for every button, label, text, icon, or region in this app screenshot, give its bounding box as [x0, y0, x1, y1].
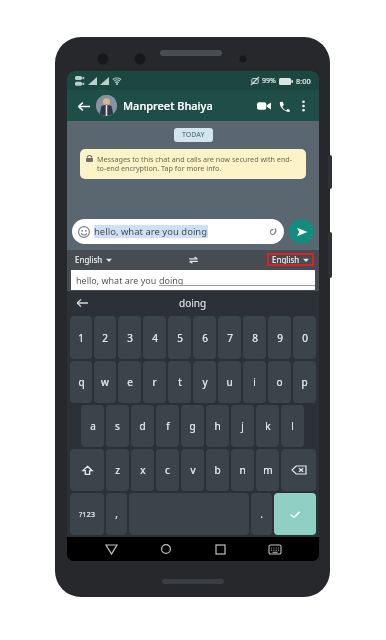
staticText: 6 — [202, 331, 208, 345]
button[interactable]: Back — [74, 97, 92, 115]
staticText: . — [260, 507, 263, 521]
button[interactable]: t — [168, 361, 191, 403]
button[interactable]: x — [131, 449, 154, 491]
staticText: v — [190, 463, 196, 477]
button[interactable]: i — [243, 361, 266, 403]
button[interactable]: c — [156, 449, 179, 491]
staticText: English — [75, 254, 103, 265]
button[interactable]: 6 — [193, 316, 216, 359]
button[interactable]: . — [251, 493, 272, 535]
button[interactable]: Profile photo — [96, 95, 117, 116]
staticText: 5 — [177, 331, 183, 345]
button[interactable]: Send — [289, 219, 314, 244]
button[interactable]: r — [143, 361, 166, 403]
button[interactable]: z — [106, 449, 129, 491]
button[interactable]: English — [75, 254, 112, 265]
staticText: doing — [159, 274, 184, 286]
staticText: q — [78, 375, 85, 389]
button[interactable]: w — [94, 361, 116, 403]
button[interactable]: Back — [100, 538, 122, 560]
staticText: u — [226, 375, 233, 389]
button[interactable]: o — [268, 361, 291, 403]
staticText: j — [241, 419, 244, 433]
button[interactable]: b — [206, 449, 229, 491]
button[interactable]: Shift — [70, 449, 104, 491]
staticText: d — [139, 419, 146, 433]
button[interactable]: 5 — [168, 316, 191, 359]
button[interactable]: Backspace — [281, 449, 316, 491]
button[interactable]: p — [293, 361, 316, 403]
staticText: TODAY — [182, 130, 205, 140]
staticText: 99% — [262, 76, 276, 86]
staticText: t — [178, 375, 182, 389]
staticText: hello, what are you — [76, 274, 159, 286]
button[interactable]: Enter — [274, 493, 316, 535]
button[interactable]: d — [131, 405, 154, 447]
button[interactable]: Symbols — [70, 493, 104, 535]
staticText: k — [265, 419, 271, 433]
staticText: w — [101, 375, 109, 389]
button[interactable]: 9 — [268, 316, 291, 359]
staticText: hello, what are you doing — [94, 225, 208, 238]
button[interactable]: 4 — [143, 316, 166, 359]
button[interactable]: Video call — [254, 96, 274, 116]
button[interactable]: y — [193, 361, 216, 403]
staticText: 9 — [277, 331, 283, 345]
button[interactable]: q — [70, 361, 92, 403]
button[interactable]: v — [181, 449, 204, 491]
button[interactable]: 0 — [293, 316, 316, 359]
button[interactable]: Home — [155, 538, 177, 560]
button[interactable]: hello, what are you doing — [72, 219, 284, 244]
button[interactable]: 2 — [94, 316, 116, 359]
staticText: y — [202, 375, 208, 389]
staticText: c — [165, 463, 170, 477]
staticText: doing — [179, 296, 207, 310]
button[interactable]: l — [281, 405, 304, 447]
button[interactable]: Messages to this chat and calls are now … — [80, 149, 306, 179]
button[interactable]: 1 — [70, 316, 92, 359]
button[interactable]: n — [231, 449, 254, 491]
button[interactable]: hello, what are you — [71, 270, 315, 290]
button[interactable]: k — [256, 405, 279, 447]
staticText: l — [291, 419, 294, 433]
button[interactable]: f — [156, 405, 179, 447]
staticText: 8:00 — [296, 76, 311, 86]
button[interactable]: More options — [294, 97, 312, 115]
staticText: p — [301, 375, 308, 389]
staticText: 0 — [302, 331, 308, 345]
staticText: ?123 — [79, 509, 96, 519]
staticText: e — [127, 375, 133, 389]
button[interactable]: 8 — [243, 316, 266, 359]
button[interactable]: e — [118, 361, 141, 403]
staticText: s — [115, 419, 120, 433]
button[interactable]: g — [181, 405, 204, 447]
button[interactable]: s — [106, 405, 129, 447]
button[interactable]: English — [267, 253, 314, 266]
button[interactable]: Back — [74, 295, 90, 311]
button[interactable]: 7 — [218, 316, 241, 359]
staticText: 1 — [78, 331, 84, 345]
staticText: o — [276, 375, 283, 389]
button[interactable]: h — [206, 405, 229, 447]
button[interactable]: u — [218, 361, 241, 403]
staticText: 2 — [102, 331, 108, 345]
button[interactable]: a — [81, 405, 104, 447]
button[interactable]: 3 — [118, 316, 141, 359]
staticText: f — [166, 419, 170, 433]
button[interactable]: m — [256, 449, 279, 491]
staticText: 8 — [252, 331, 258, 345]
staticText: Messages to this chat and calls are now … — [97, 154, 300, 174]
button[interactable]: doing — [179, 296, 207, 310]
staticText: h — [214, 419, 221, 433]
staticText: Manpreet Bhaiya — [123, 98, 213, 113]
button[interactable]: j — [231, 405, 254, 447]
button[interactable]: Keyboard — [264, 538, 286, 560]
button[interactable]: Recents — [209, 538, 231, 560]
button[interactable]: , — [106, 493, 127, 535]
staticText: a — [90, 419, 96, 433]
button[interactable]: Swap languages — [188, 256, 199, 264]
staticText: i — [253, 375, 256, 389]
staticText: z — [115, 463, 120, 477]
button[interactable]: Voice call — [274, 96, 294, 116]
